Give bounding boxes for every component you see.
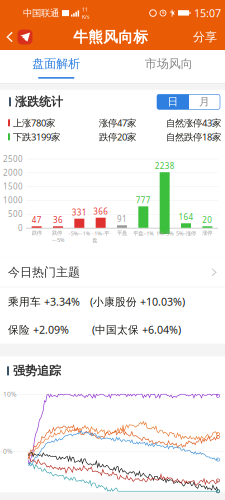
staticText: 盘面解析 (32, 56, 80, 71)
staticText: 涨跌统计 (15, 94, 63, 109)
staticText: 涨停47家 (99, 117, 136, 129)
staticText: 331 (72, 207, 87, 218)
staticText: 0 (18, 222, 23, 233)
staticText: 20 (202, 215, 212, 225)
staticText: 5%~涨停 (176, 230, 196, 237)
button[interactable]: 月 (189, 94, 220, 109)
staticText: 分享 (193, 30, 217, 44)
staticText: 777 (136, 195, 151, 205)
button[interactable]: 日 (157, 94, 189, 109)
staticText: 今日热门主题 (8, 265, 80, 280)
button[interactable]: 盘面解析 (0, 50, 112, 83)
staticText: 乘用车 +3.34% (8, 294, 80, 309)
staticText: 164 (178, 212, 193, 222)
staticText: 2000 (3, 167, 23, 178)
staticText: -1%~平盘 (92, 230, 109, 243)
staticText: 平盘~1% (133, 230, 153, 237)
staticText: 2238 (155, 161, 175, 171)
staticText: 日 (167, 95, 178, 108)
staticText: 市场风向 (145, 56, 193, 71)
staticText: 500 (8, 209, 23, 219)
staticText: 中国联通 (23, 7, 59, 19)
staticText: 跌停 (32, 230, 42, 236)
staticText: 自然跌停18家 (166, 131, 221, 143)
staticText: 10% (3, 390, 17, 399)
staticText: -5%~-1% (69, 230, 90, 237)
staticText: 366 (93, 206, 108, 217)
button[interactable]: 分享 (185, 24, 225, 50)
staticText: 保险 +2.09% (8, 322, 69, 337)
staticText: 月 (199, 95, 210, 108)
staticText: 强势追踪 (13, 363, 61, 378)
button[interactable]: 返回 (0, 24, 36, 50)
staticText: 11 K/s (82, 6, 90, 20)
staticText: 平盘 (117, 230, 127, 236)
staticText: 36 (53, 215, 63, 225)
staticText: 0% (3, 447, 13, 456)
staticText: 1%~5% (156, 230, 173, 237)
staticText: 自然涨停43家 (166, 117, 221, 129)
staticText: 上涨780家 (13, 117, 55, 129)
button[interactable]: 今日热门主题 (0, 258, 225, 287)
staticText: (中国太保 +6.04%) (92, 322, 181, 337)
button[interactable]: 市场风向 (112, 50, 225, 83)
staticText: 牛熊风向标 (73, 28, 148, 46)
staticText: (小康股份 +10.03%) (90, 294, 185, 309)
staticText: 91 (117, 214, 127, 224)
staticText: 2500 (3, 153, 23, 164)
staticText: 下跌3199家 (13, 131, 60, 143)
staticText: 47 (32, 215, 42, 225)
staticText: 1000 (3, 195, 23, 205)
staticText: 1500 (3, 181, 23, 192)
staticText: 跌停~-5% (52, 230, 64, 243)
staticText: 15:07 (194, 6, 221, 20)
staticText: 跌停20家 (99, 131, 136, 143)
staticText: 涨停 (202, 230, 212, 236)
